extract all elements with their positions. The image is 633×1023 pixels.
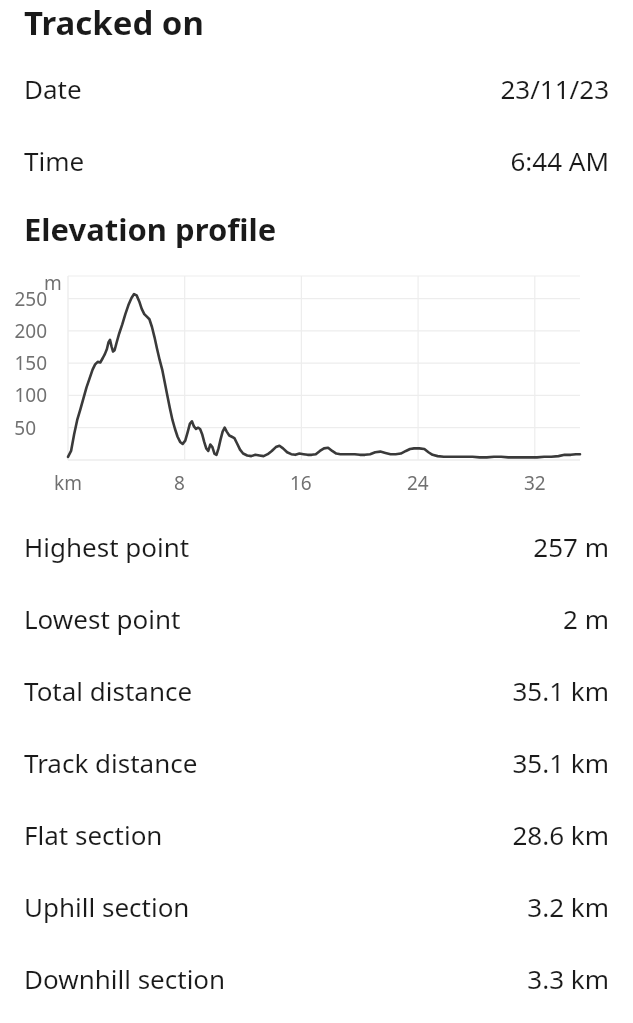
button[interactable]: Date	[0, 52, 633, 124]
staticText: km	[54, 470, 82, 496]
staticText: Downhill section	[24, 961, 226, 996]
staticText: Date	[24, 71, 82, 106]
staticText: 257 m	[533, 529, 609, 564]
staticText: 35.1 km	[512, 673, 609, 708]
staticText: Highest point	[24, 529, 190, 564]
button[interactable]: Downhill section	[0, 942, 633, 1014]
staticText: 35.1 km	[512, 745, 609, 780]
button[interactable]: Lowest point	[0, 582, 633, 654]
staticText: 8	[174, 470, 185, 496]
staticText: Tracked on	[24, 0, 204, 45]
staticText: 28.6 km	[512, 817, 609, 852]
staticText: Elevation profile	[24, 208, 277, 250]
staticText: Lowest point	[24, 601, 181, 636]
staticText: 16	[290, 470, 312, 496]
button[interactable]: Flat section	[0, 798, 633, 870]
button[interactable]: Time	[0, 124, 633, 196]
staticText: 24	[407, 470, 429, 496]
staticText: 250	[14, 286, 47, 312]
staticText: Uphill section	[24, 889, 190, 924]
button[interactable]: Uphill section	[0, 870, 633, 942]
staticText: 200	[14, 318, 47, 344]
staticText: Flat section	[24, 817, 163, 852]
button[interactable]: Total distance	[0, 654, 633, 726]
staticText: Total distance	[24, 673, 193, 708]
staticText: 23/11/23	[500, 71, 609, 106]
staticText: Track distance	[24, 745, 198, 780]
staticText: Time	[24, 143, 85, 178]
button[interactable]: Track distance	[0, 726, 633, 798]
staticText: 50	[14, 415, 36, 441]
staticText: 3.3 km	[527, 961, 609, 996]
staticText: 3.2 km	[527, 889, 609, 924]
staticText: 32	[524, 470, 546, 496]
staticText: m	[44, 270, 62, 296]
staticText: 6:44 AM	[510, 143, 609, 178]
staticText: 2 m	[563, 601, 609, 636]
button[interactable]: Highest point	[0, 510, 633, 582]
staticText: 100	[14, 382, 47, 408]
button[interactable]: m	[0, 270, 633, 500]
staticText: 150	[14, 350, 47, 376]
